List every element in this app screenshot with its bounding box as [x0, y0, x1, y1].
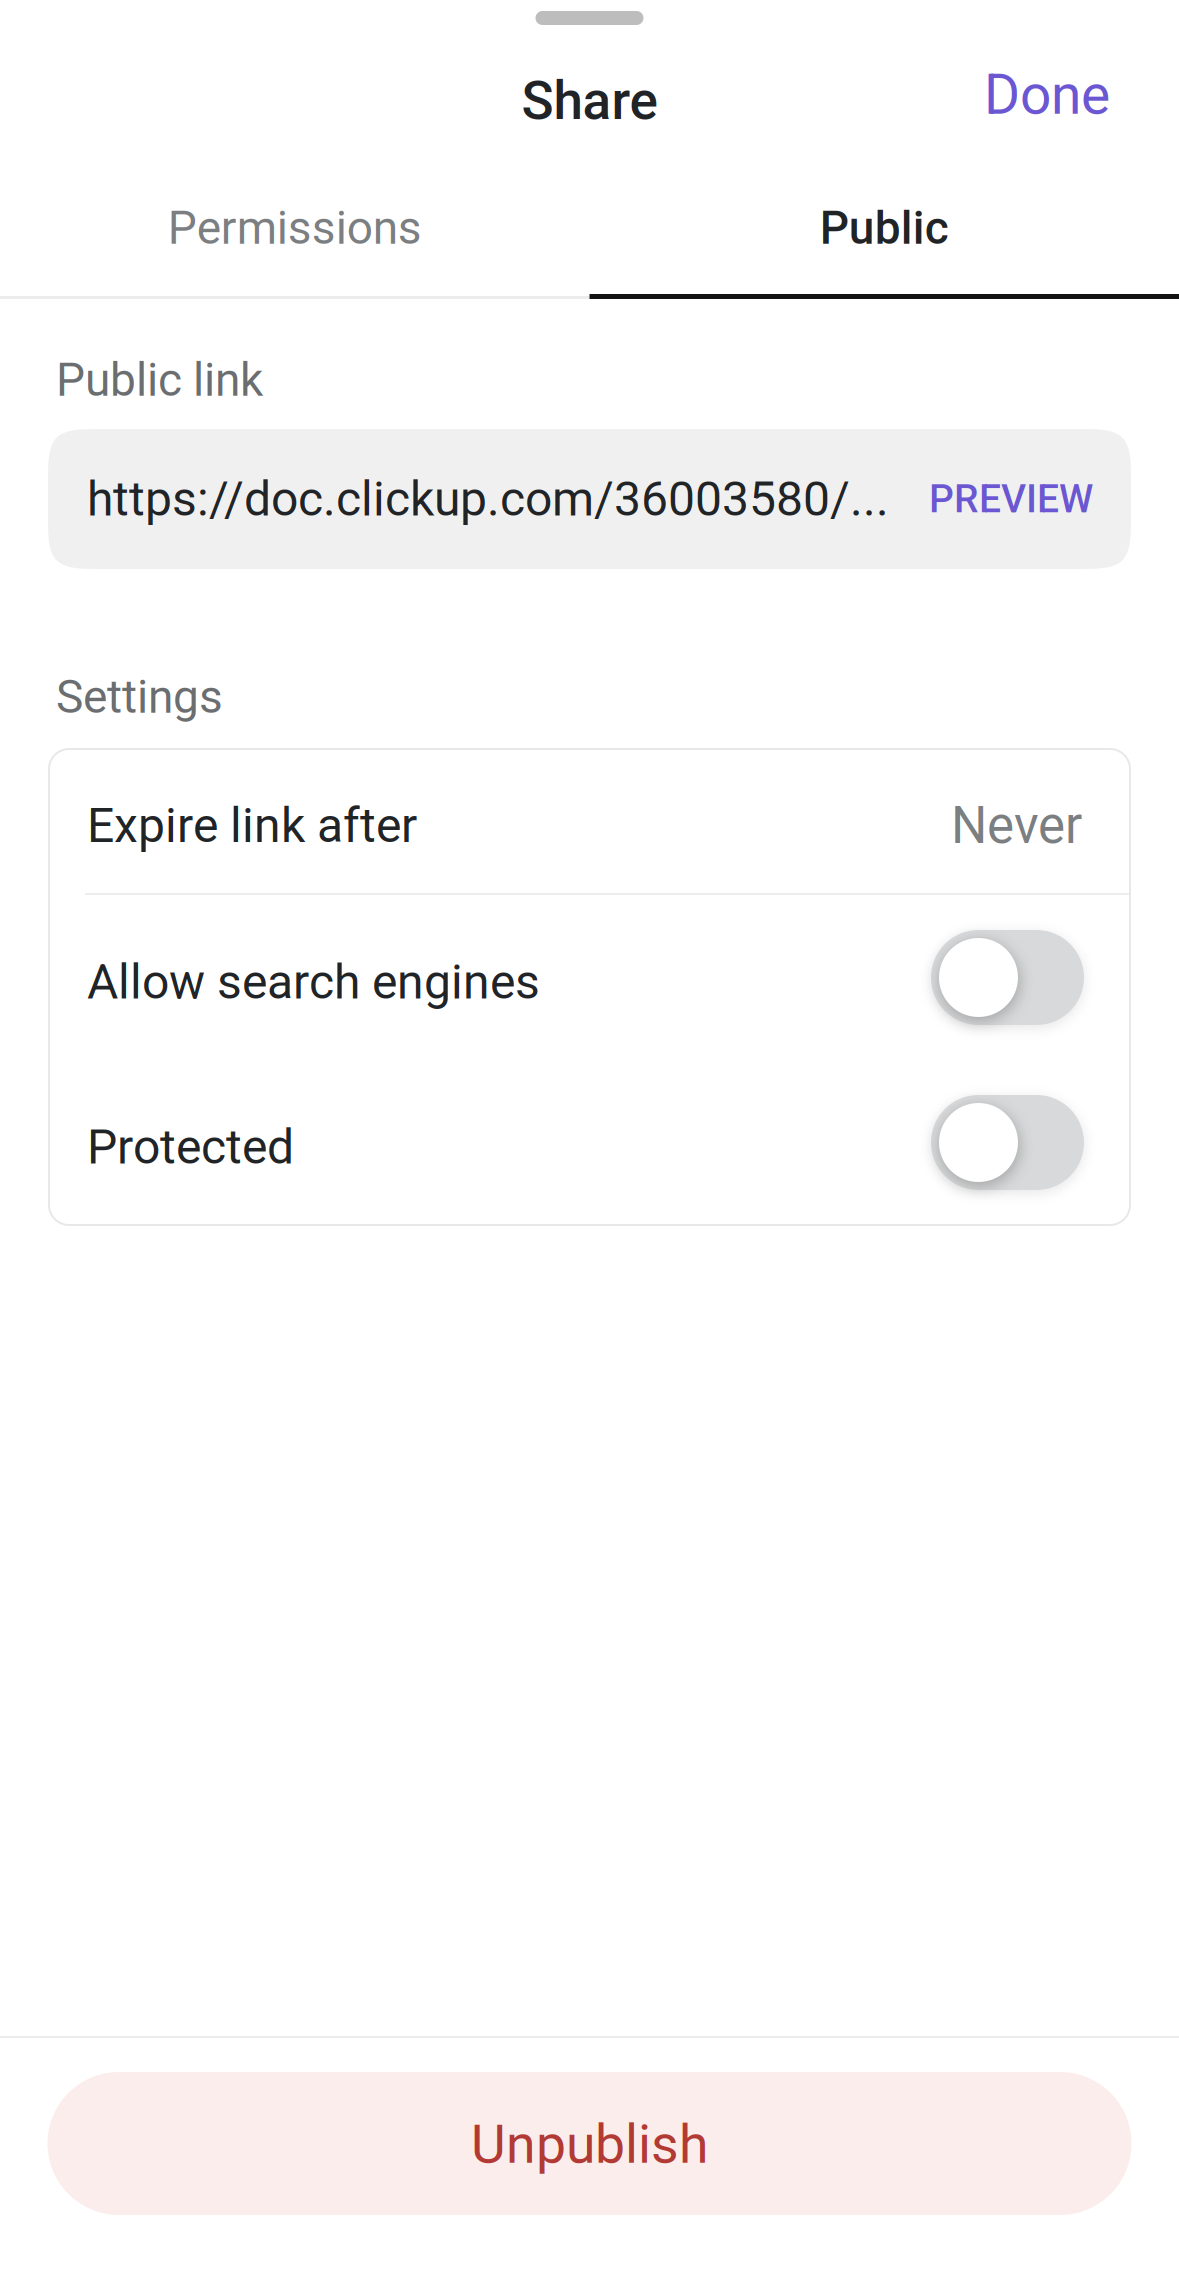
- staticText: Expire link after: [87, 797, 417, 854]
- button[interactable]: Done: [944, 43, 1179, 159]
- staticText: PREVIEW: [929, 476, 1093, 522]
- staticText: Protected: [87, 1119, 294, 1175]
- staticText: Done: [984, 63, 1110, 127]
- button[interactable]: Public: [589, 177, 1179, 279]
- staticText: Public: [820, 201, 949, 255]
- staticText: Allow search engines: [87, 954, 540, 1010]
- staticText: Permissions: [168, 201, 422, 255]
- button[interactable]: Allow search engines: [49, 895, 1130, 1060]
- button[interactable]: Protected: [49, 1060, 1130, 1225]
- staticText: Unpublish: [471, 2113, 708, 2176]
- button[interactable]: PREVIEW: [929, 476, 1093, 522]
- staticText: Public link: [56, 353, 263, 407]
- button[interactable]: Permissions: [0, 177, 589, 279]
- button[interactable]: Expire link after: [49, 749, 1130, 893]
- staticText: Share: [521, 70, 657, 132]
- staticText: Settings: [56, 670, 223, 724]
- staticText: https://doc.clickup.com/36003580/...: [87, 471, 889, 527]
- staticText: Never: [951, 796, 1082, 855]
- button[interactable]: Unpublish: [47, 2072, 1131, 2215]
